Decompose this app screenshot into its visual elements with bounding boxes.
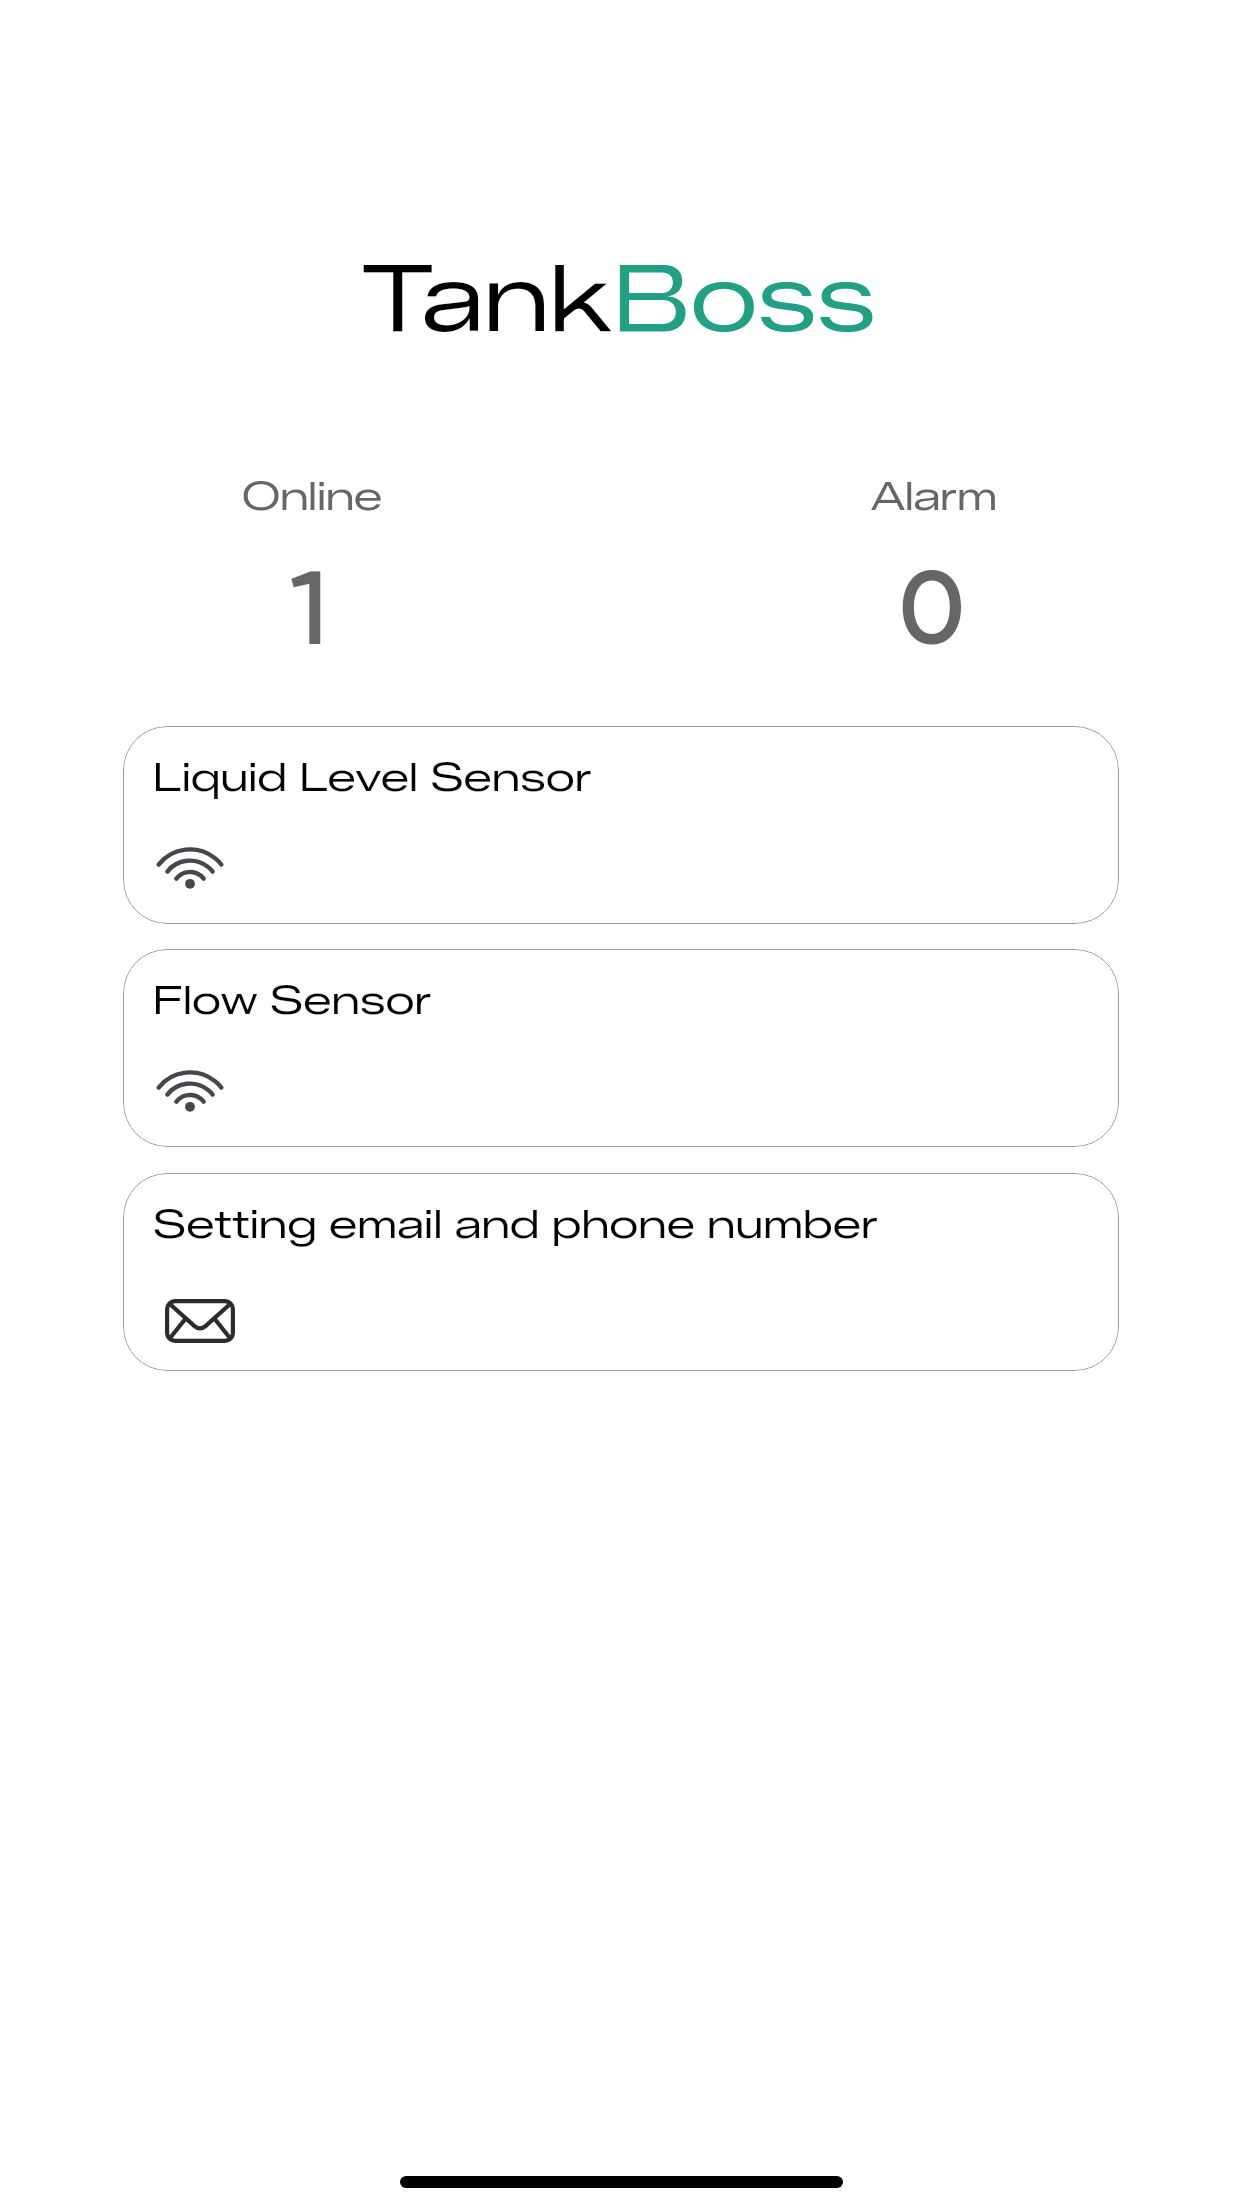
button[interactable]: Flow Sensor [123, 949, 1119, 1147]
button[interactable]: Liquid Level Sensor [123, 726, 1119, 924]
staticText: 0 [896, 543, 968, 672]
staticText: TankBoss [0, 242, 1240, 354]
staticText: Alarm [871, 471, 997, 520]
button[interactable]: Setting email and phone number [123, 1173, 1119, 1371]
other: Wi-Fi connected [156, 1070, 224, 1112]
other: Wi-Fi connected [156, 847, 224, 889]
staticText: Setting email and phone number [153, 1200, 879, 1248]
button[interactable]: Online [0, 471, 621, 672]
button[interactable]: Alarm [621, 471, 1242, 672]
staticText: Liquid Level Sensor [153, 753, 593, 801]
staticText: 1 [291, 543, 331, 672]
other: Email settings [165, 1299, 235, 1343]
staticText: Online [242, 471, 383, 520]
staticText: Flow Sensor [153, 976, 433, 1024]
